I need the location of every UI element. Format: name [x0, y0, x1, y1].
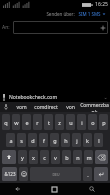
staticText: v — [54, 154, 57, 161]
button[interactable]: o — [88, 114, 97, 130]
staticText: j — [76, 137, 78, 144]
staticText: m — [86, 154, 92, 161]
staticText: g — [53, 137, 57, 144]
button[interactable]: b — [62, 150, 71, 164]
staticText: y — [21, 154, 24, 161]
staticText: b — [65, 154, 69, 161]
staticText: &123 — [4, 171, 16, 177]
button[interactable]: Leerzeichen — [30, 167, 81, 181]
button[interactable]: Commerzbank — [79, 102, 110, 112]
button[interactable]: t — [44, 114, 53, 130]
staticText: von — [66, 104, 75, 111]
staticText: a — [9, 137, 13, 144]
staticText: e — [25, 119, 29, 126]
staticText: d — [31, 137, 35, 144]
staticText: Commerzbank — [79, 102, 110, 112]
staticText: An: — [2, 24, 13, 31]
button[interactable]: Notebookcheck.com — [9, 94, 103, 101]
button[interactable]: u — [66, 114, 75, 130]
button[interactable]: h — [61, 133, 70, 147]
button[interactable]: comdirect — [30, 102, 61, 112]
button[interactable]: z — [55, 114, 64, 130]
button[interactable]: n — [73, 150, 82, 164]
staticText: comdirect — [34, 104, 58, 111]
staticText: r — [36, 119, 39, 126]
staticText: vom — [16, 104, 27, 111]
button[interactable]: d — [28, 133, 37, 147]
button[interactable]: Startseite — [36, 183, 73, 195]
button[interactable]: r — [33, 114, 42, 130]
button[interactable]: vom — [12, 102, 30, 112]
staticText: p — [102, 119, 106, 126]
staticText: i — [81, 119, 83, 126]
button[interactable]: v — [51, 150, 60, 164]
button[interactable]: q — [2, 114, 10, 130]
staticText: c — [43, 154, 46, 161]
button[interactable]: Zurück — [0, 183, 36, 195]
staticText: Notebookcheck.com — [9, 94, 58, 101]
staticText: q — [4, 119, 8, 126]
staticText: DEU — [52, 172, 60, 177]
button[interactable]: Suche — [73, 183, 110, 195]
button[interactable]: k — [83, 133, 92, 147]
button[interactable]: w — [12, 114, 20, 130]
button[interactable]: Löschen — [95, 150, 108, 164]
button[interactable]: l — [94, 133, 103, 147]
staticText: . — [87, 171, 89, 178]
staticText: f — [43, 137, 45, 144]
staticText: x — [32, 154, 35, 161]
staticText: o — [91, 119, 95, 126]
staticText: u — [69, 119, 73, 126]
button[interactable]: j — [72, 133, 81, 147]
staticText: s — [20, 137, 23, 144]
button[interactable]: . — [83, 167, 92, 181]
button[interactable]: Kontakt hinzufügen — [13, 21, 108, 34]
staticText: h — [64, 137, 68, 144]
button[interactable]: Umschalten — [2, 150, 16, 164]
button[interactable]: s — [17, 133, 26, 147]
staticText: z — [58, 119, 61, 126]
button[interactable]: Kontakt hinzufügen — [100, 25, 106, 31]
button[interactable]: SIM 1 SMS — [77, 11, 107, 17]
button[interactable]: c — [40, 150, 49, 164]
staticText: k — [86, 137, 89, 144]
button[interactable]: f — [39, 133, 48, 147]
other: Seiteninfo — [2, 94, 6, 101]
button[interactable]: Spracheingabe — [0, 102, 12, 112]
button[interactable]: i — [77, 114, 86, 130]
staticText: t — [48, 119, 50, 126]
button[interactable]: x — [29, 150, 38, 164]
button[interactable]: m — [84, 150, 93, 164]
button[interactable]: g — [50, 133, 59, 147]
staticText: Senden über: — [46, 11, 75, 17]
button[interactable]: &123 — [2, 167, 17, 181]
staticText: l — [98, 137, 100, 144]
staticText: SIM 1 SMS — [78, 11, 101, 17]
button[interactable]: Eingabe — [94, 167, 108, 181]
button[interactable]: von — [61, 102, 79, 112]
button[interactable]: y — [18, 150, 27, 164]
staticText: w — [14, 119, 19, 126]
staticText: 16:25 — [95, 1, 108, 8]
button[interactable]: a — [6, 133, 15, 147]
button[interactable]: e — [22, 114, 31, 130]
button[interactable]: p — [99, 114, 108, 130]
staticText: ⌄ — [103, 94, 108, 100]
staticText: n — [76, 154, 80, 161]
button[interactable]: Emoji — [19, 167, 28, 181]
